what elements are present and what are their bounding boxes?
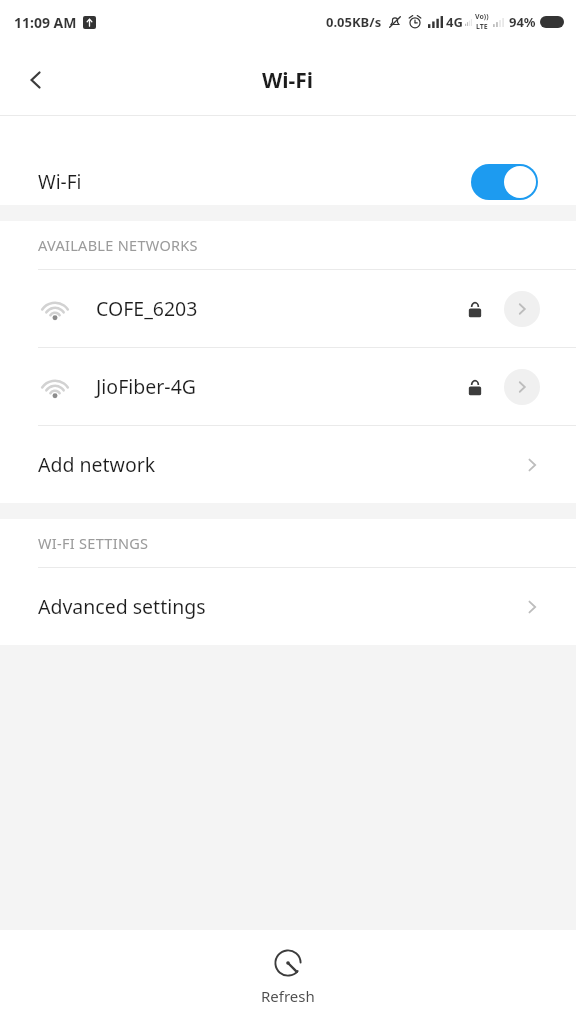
button[interactable]: Advanced settings (0, 568, 576, 645)
staticText: Wi-Fi (262, 66, 314, 95)
staticText: Add network (38, 451, 156, 478)
button[interactable]: JioFiber-4G (0, 348, 576, 425)
staticText: Advanced settings (38, 593, 206, 620)
staticText: 11:09 AM (14, 13, 77, 32)
staticText: WI-FI SETTINGS (38, 533, 149, 553)
staticText: AVAILABLE NETWORKS (38, 235, 198, 255)
staticText: Wi-Fi (38, 169, 82, 195)
staticText: 4G (446, 13, 463, 31)
button[interactable]: Add network (0, 426, 576, 503)
button[interactable]: Wi-Fi (0, 158, 576, 205)
staticText: COFE_6203 (96, 295, 198, 322)
button[interactable]: COFE_6203 (0, 270, 576, 347)
button[interactable]: Back (8, 52, 64, 108)
staticText: Refresh (261, 986, 315, 1006)
staticText: Vo)) (475, 12, 489, 22)
staticText: 0.05KB/s (326, 13, 382, 31)
button[interactable]: Refresh (231, 942, 345, 1012)
staticText: 94% (509, 13, 536, 31)
staticText: JioFiber-4G (96, 373, 196, 400)
staticText: LTE (476, 22, 488, 32)
